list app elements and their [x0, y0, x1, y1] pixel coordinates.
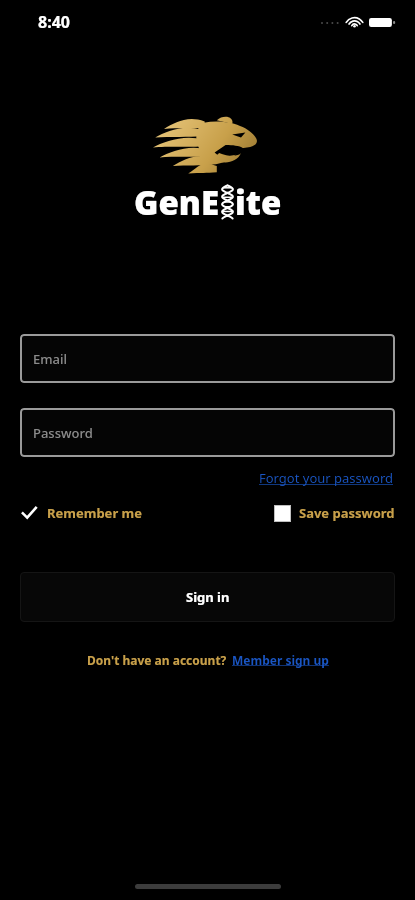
- staticText: Don't have an account?: [87, 652, 227, 668]
- staticText: ite: [235, 180, 282, 225]
- staticText: Member sign up: [232, 652, 329, 668]
- button[interactable]: Forgot your password: [257, 467, 395, 489]
- staticText: Remember me: [47, 504, 143, 522]
- staticText: GenE: [134, 180, 220, 225]
- button[interactable]: Save password: [274, 504, 395, 522]
- button[interactable]: Sign in: [20, 572, 395, 622]
- staticText: 8:40: [38, 11, 70, 33]
- button[interactable]: Email: [20, 334, 395, 383]
- button[interactable]: Member sign up: [232, 652, 329, 668]
- staticText: Save password: [299, 504, 395, 522]
- button[interactable]: Password: [20, 408, 395, 457]
- staticText: Forgot your password: [259, 469, 393, 487]
- staticText: Email: [33, 350, 68, 368]
- button[interactable]: Remember me: [20, 504, 143, 522]
- staticText: Password: [33, 424, 93, 442]
- staticText: Sign in: [186, 588, 230, 606]
